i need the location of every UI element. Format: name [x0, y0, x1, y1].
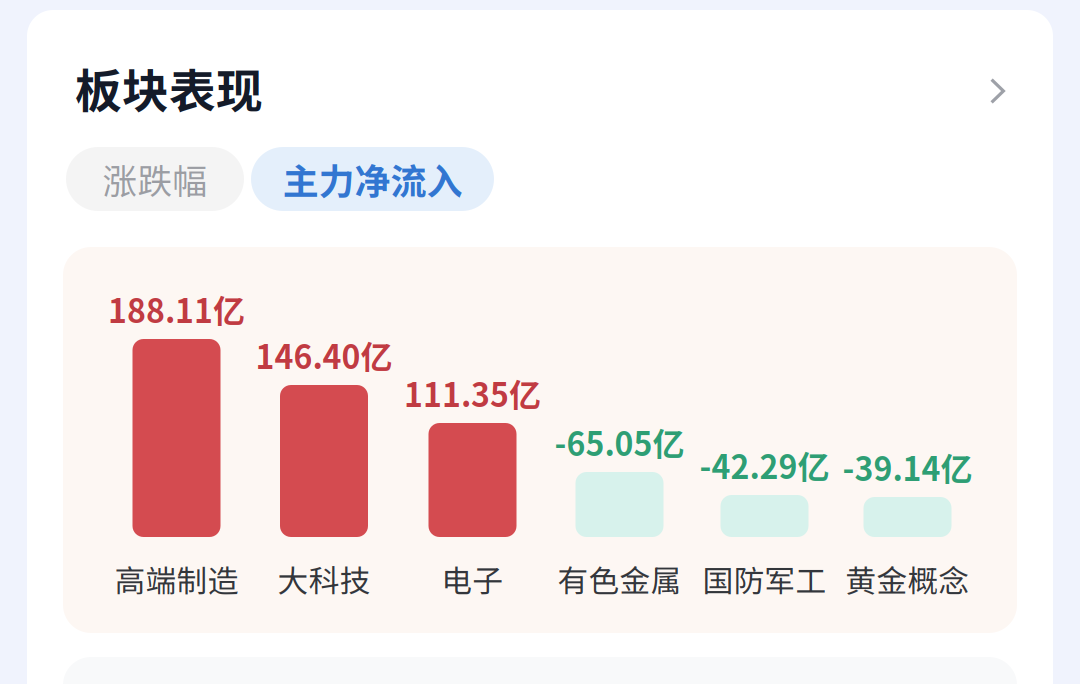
staticText: 涨跌幅 — [102, 154, 207, 204]
staticText: 146.40亿 — [255, 332, 392, 378]
button[interactable]: 板块表现 — [75, 56, 1005, 120]
staticText: 黄金概念 — [845, 557, 969, 601]
staticText: -65.05亿 — [554, 419, 684, 465]
staticText: 111.35亿 — [404, 370, 541, 416]
staticText: 高端制造 — [114, 557, 238, 601]
button[interactable]: 主力净流入 — [251, 147, 494, 211]
button[interactable]: 涨跌幅 — [66, 147, 244, 211]
staticText: 188.11亿 — [108, 286, 245, 332]
staticText: 电子 — [441, 557, 503, 601]
staticText: 板块表现 — [75, 54, 263, 122]
staticText: 大科技 — [277, 557, 370, 601]
staticText: 有色金属 — [557, 557, 681, 601]
staticText: 主力净流入 — [282, 153, 462, 205]
staticText: 国防军工 — [702, 557, 826, 601]
staticText: -42.29亿 — [699, 442, 829, 488]
staticText: -39.14亿 — [842, 444, 972, 490]
